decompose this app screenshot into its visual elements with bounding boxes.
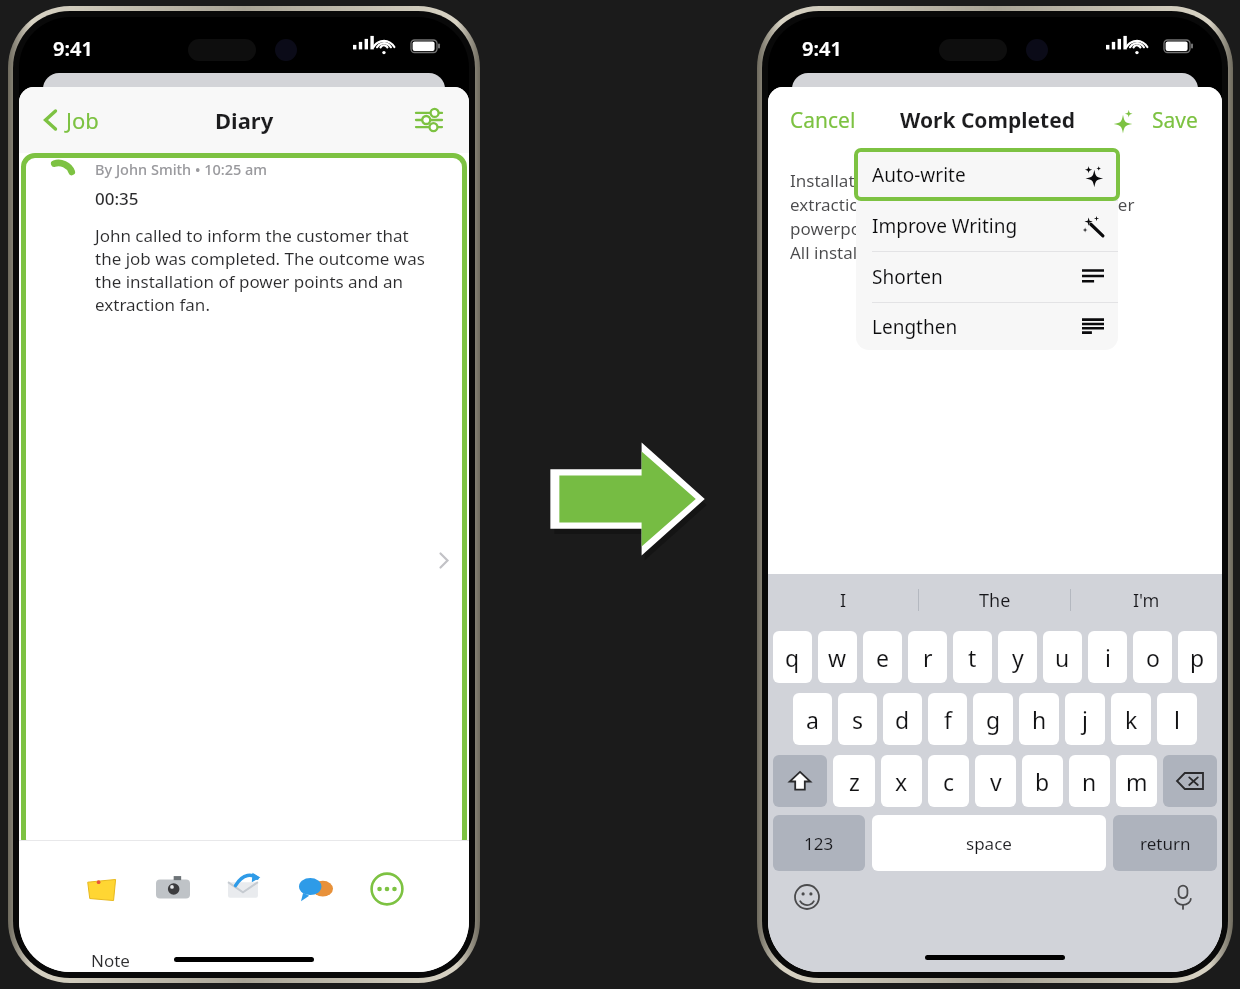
button[interactable]: p xyxy=(1178,631,1217,683)
button[interactable]: r xyxy=(908,631,947,683)
button[interactable]: return xyxy=(1113,815,1217,871)
staticText: r xyxy=(923,642,933,673)
button[interactable]: e xyxy=(863,631,902,683)
button[interactable]: More xyxy=(362,864,412,914)
button[interactable]: k xyxy=(1111,693,1151,745)
button[interactable]: Email xyxy=(220,864,270,914)
staticText: p xyxy=(1190,642,1205,673)
button[interactable]: space xyxy=(872,815,1106,871)
button[interactable]: j xyxy=(1065,693,1105,745)
button[interactable]: I xyxy=(768,574,918,626)
staticText: e xyxy=(876,642,889,673)
staticText: j xyxy=(1082,704,1088,735)
button[interactable]: g xyxy=(973,693,1013,745)
staticText: Lengthen xyxy=(872,314,1082,340)
button[interactable]: m xyxy=(1116,755,1157,807)
button[interactable]: Dictate xyxy=(1166,880,1200,914)
button[interactable]: Camera xyxy=(148,864,198,914)
button[interactable]: f xyxy=(928,693,967,745)
staticText: return xyxy=(1140,832,1191,855)
button[interactable]: By John Smith • 10:25 am xyxy=(25,153,463,972)
staticText: I'm xyxy=(1133,588,1160,613)
staticText: 9:41 xyxy=(802,35,842,62)
staticText: m xyxy=(1126,766,1148,797)
button[interactable]: h xyxy=(1019,693,1059,745)
staticText: z xyxy=(849,766,860,797)
button[interactable]: d xyxy=(883,693,922,745)
button[interactable]: a xyxy=(793,693,832,745)
staticText: i xyxy=(1105,642,1111,673)
button[interactable]: Emoji xyxy=(790,880,824,914)
staticText: b xyxy=(1035,766,1050,797)
button[interactable]: w xyxy=(818,631,857,683)
button[interactable]: Filter xyxy=(409,103,449,137)
staticText: l xyxy=(1174,704,1180,735)
staticText: h xyxy=(1032,704,1047,735)
button[interactable]: v xyxy=(975,755,1016,807)
staticText: s xyxy=(852,704,864,735)
button[interactable]: c xyxy=(928,755,969,807)
button[interactable]: 123 xyxy=(773,815,865,871)
button[interactable]: Messages xyxy=(291,864,341,914)
staticText: space xyxy=(966,832,1012,855)
button[interactable]: u xyxy=(1043,631,1082,683)
button[interactable]: l xyxy=(1157,693,1197,745)
staticText: Shorten xyxy=(872,264,1082,290)
button[interactable]: o xyxy=(1133,631,1172,683)
staticText: d xyxy=(895,704,910,735)
staticText: c xyxy=(943,766,955,797)
button[interactable]: y xyxy=(998,631,1037,683)
button[interactable]: z xyxy=(833,755,875,807)
button[interactable]: Auto-write xyxy=(856,150,1118,200)
staticText: f xyxy=(944,704,952,735)
staticText: w xyxy=(828,642,847,673)
staticText: John called to inform the customer that … xyxy=(95,224,431,316)
staticText: y xyxy=(1012,642,1024,673)
button[interactable]: s xyxy=(838,693,877,745)
staticText: a xyxy=(806,704,819,735)
staticText: By John Smith • 10:25 am xyxy=(95,159,268,179)
button[interactable]: Lengthen xyxy=(856,303,1118,350)
staticText: k xyxy=(1125,704,1138,735)
staticText: u xyxy=(1055,642,1070,673)
staticText: Installation of powerpoints and overhead… xyxy=(790,169,1135,264)
staticText: Improve Writing xyxy=(872,213,1082,239)
button[interactable]: Save xyxy=(1148,102,1202,139)
staticText: v xyxy=(990,766,1002,797)
staticText: g xyxy=(986,704,1001,735)
staticText: Note xyxy=(91,949,130,972)
button[interactable]: Improve Writing xyxy=(856,201,1118,251)
staticText: The xyxy=(979,588,1011,613)
staticText: Diary xyxy=(215,105,274,135)
button[interactable]: AI assist xyxy=(1106,104,1140,138)
staticText: Work Completed xyxy=(900,106,1075,135)
staticText: 123 xyxy=(804,832,834,855)
button[interactable]: Shorten xyxy=(856,252,1118,302)
button[interactable]: Cancel xyxy=(768,102,864,139)
button[interactable]: Backspace xyxy=(1163,755,1217,807)
button[interactable]: I'm xyxy=(1071,574,1222,626)
button[interactable]: x xyxy=(881,755,922,807)
button[interactable]: Shift xyxy=(773,755,827,807)
staticText: n xyxy=(1082,766,1097,797)
button[interactable]: i xyxy=(1088,631,1127,683)
staticText: Auto-write xyxy=(872,162,1082,188)
staticText: 9:41 xyxy=(53,35,93,62)
button[interactable]: q xyxy=(773,631,812,683)
button[interactable]: Job xyxy=(37,97,105,143)
button[interactable]: b xyxy=(1022,755,1063,807)
staticText: q xyxy=(785,642,800,673)
staticText: t xyxy=(968,642,977,673)
staticText: Job xyxy=(66,105,99,135)
button[interactable]: t xyxy=(953,631,992,683)
button[interactable]: Note xyxy=(77,864,127,914)
staticText: I xyxy=(840,588,847,613)
staticText: o xyxy=(1146,642,1160,673)
staticText: 00:35 xyxy=(95,187,139,210)
button[interactable]: The xyxy=(919,574,1070,626)
staticText: x xyxy=(895,766,908,797)
button[interactable]: n xyxy=(1069,755,1110,807)
